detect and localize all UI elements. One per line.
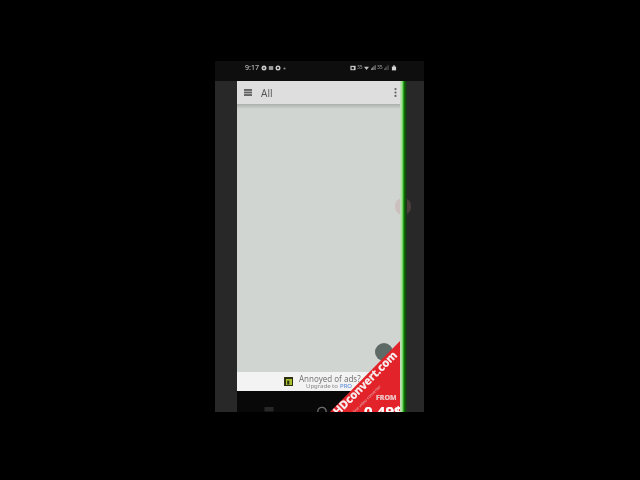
button[interactable]: Annoyed of ads? — [237, 372, 406, 391]
staticText: Online video converter — [348, 384, 382, 418]
button[interactable]: Recent apps — [249, 391, 289, 412]
staticText: PRO — [340, 382, 353, 390]
button[interactable]: More options — [384, 81, 406, 104]
staticText: 9:17 — [245, 63, 259, 73]
staticText: 35 — [357, 64, 363, 71]
staticText: FROM — [376, 393, 397, 403]
staticText: 0.49$ — [364, 401, 403, 421]
staticText: HDconvert.com — [329, 347, 399, 417]
button[interactable]: Back — [354, 391, 394, 412]
staticText: Upgrade to — [306, 382, 340, 390]
staticText: All — [261, 86, 273, 100]
button[interactable]: Add — [375, 343, 393, 361]
staticText: Annoyed of ads? — [299, 373, 361, 384]
button[interactable]: Home — [302, 391, 342, 412]
button[interactable]: Open navigation menu — [237, 81, 259, 104]
staticText: 35 — [377, 64, 383, 71]
